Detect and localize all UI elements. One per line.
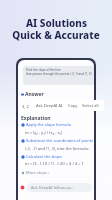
staticText: Explanation	[21, 115, 51, 122]
button[interactable]: Ask DeepAI AI	[36, 103, 63, 108]
button[interactable]: Answer	[21, 91, 44, 98]
staticText: Find the slope of the line	[26, 68, 61, 72]
staticText: Substitute the coordinates of points	[26, 138, 94, 143]
staticText: 3, 2	[22, 104, 29, 109]
button[interactable]: More steps ›	[21, 170, 50, 175]
button[interactable]: Camera	[19, 184, 25, 190]
staticText: m = (3 - (-1)) / (1 - (-3)) = 4 / 4 = 1	[25, 161, 84, 166]
staticText: that passes through the points (-3, 1) a…	[26, 72, 92, 76]
button[interactable]: Ask DeepAI follow-up...	[27, 183, 92, 192]
staticText: Ask DeepAI follow-up...	[31, 185, 75, 190]
staticText: Answer	[25, 91, 44, 98]
staticText: Calculate the slope:	[26, 154, 63, 159]
staticText: (-3, -1) and (1, 3), into the formula:	[25, 146, 89, 151]
button[interactable]: Select all	[82, 103, 99, 108]
staticText: m = (y₂ - y₁) / (x₂ - x₁)	[25, 130, 63, 135]
staticText: Apply the slope formula	[26, 122, 71, 127]
staticText: More steps ›	[26, 170, 50, 175]
button[interactable]: Copy	[68, 103, 78, 108]
staticText: AI Solutions	[26, 16, 87, 30]
staticText: Quick & Accurate	[12, 28, 100, 42]
